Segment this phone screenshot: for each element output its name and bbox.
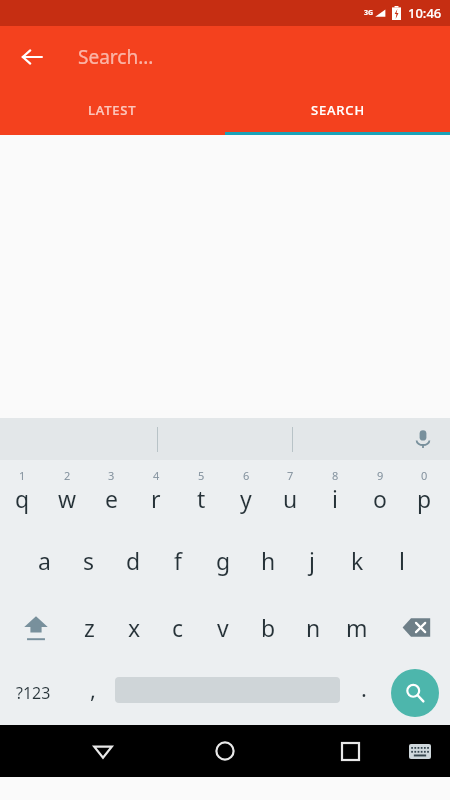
- staticText: SEARCH: [311, 101, 365, 119]
- staticText: LATEST: [88, 101, 137, 119]
- button[interactable]: j: [290, 527, 334, 594]
- staticText: l: [399, 545, 405, 576]
- button[interactable]: ,: [72, 661, 114, 725]
- button[interactable]: 2: [45, 460, 89, 527]
- button[interactable]: z: [67, 594, 111, 661]
- staticText: u: [283, 483, 298, 514]
- button[interactable]: 0: [402, 460, 446, 527]
- staticText: c: [172, 612, 184, 643]
- staticText: z: [84, 612, 95, 643]
- staticText: w: [58, 483, 77, 514]
- staticText: q: [15, 483, 30, 514]
- button[interactable]: h: [246, 527, 290, 594]
- staticText: r: [151, 483, 161, 514]
- button[interactable]: Backspace: [388, 594, 446, 661]
- staticText: 3G: [364, 8, 374, 18]
- button[interactable]: ?123: [2, 661, 64, 725]
- staticText: s: [83, 545, 95, 576]
- staticText: j: [309, 545, 315, 576]
- staticText: 1: [19, 468, 26, 483]
- button[interactable]: s: [67, 527, 111, 594]
- staticText: 7: [287, 468, 294, 483]
- staticText: f: [174, 545, 182, 576]
- button[interactable]: 5: [179, 460, 223, 527]
- staticText: y: [240, 483, 252, 514]
- button[interactable]: 7: [268, 460, 312, 527]
- staticText: p: [417, 483, 432, 514]
- button[interactable]: d: [111, 527, 155, 594]
- button[interactable]: 9: [358, 460, 402, 527]
- button[interactable]: .: [345, 661, 383, 725]
- staticText: h: [261, 545, 276, 576]
- staticText: o: [373, 483, 387, 514]
- staticText: t: [197, 483, 206, 514]
- staticText: g: [216, 545, 231, 576]
- button[interactable]: Shift: [6, 594, 66, 661]
- staticText: i: [332, 483, 338, 514]
- staticText: ,: [90, 674, 96, 704]
- button[interactable]: a: [22, 527, 66, 594]
- staticText: v: [217, 612, 229, 643]
- staticText: 3: [108, 468, 115, 483]
- staticText: 5: [198, 468, 205, 483]
- staticText: e: [105, 483, 118, 514]
- button[interactable]: k: [335, 527, 379, 594]
- button[interactable]: Search...: [78, 35, 450, 79]
- button[interactable]: 3: [89, 460, 133, 527]
- staticText: .: [361, 673, 367, 703]
- button[interactable]: b: [246, 594, 290, 661]
- button[interactable]: 4: [134, 460, 178, 527]
- staticText: b: [261, 612, 276, 643]
- button[interactable]: m: [335, 594, 379, 661]
- button[interactable]: 1: [0, 460, 44, 527]
- button[interactable]: v: [201, 594, 245, 661]
- staticText: 4: [153, 468, 160, 483]
- staticText: 8: [332, 468, 339, 483]
- button[interactable]: n: [291, 594, 335, 661]
- button[interactable]: SEARCH: [225, 88, 450, 132]
- staticText: 10:46: [408, 4, 442, 22]
- staticText: n: [306, 612, 321, 643]
- button[interactable]: 6: [224, 460, 268, 527]
- button[interactable]: LATEST: [0, 88, 225, 132]
- button[interactable]: Search: [391, 669, 439, 717]
- staticText: 2: [64, 468, 71, 483]
- button[interactable]: Back: [12, 37, 52, 77]
- staticText: ?123: [16, 682, 51, 704]
- staticText: 6: [243, 468, 250, 483]
- button[interactable]: Home: [195, 725, 255, 777]
- staticText: x: [128, 612, 141, 643]
- staticText: k: [351, 545, 364, 576]
- button[interactable]: f: [156, 527, 200, 594]
- button[interactable]: Voice input: [405, 421, 441, 457]
- staticText: a: [38, 545, 51, 576]
- button[interactable]: Hide keyboard: [73, 725, 133, 777]
- button[interactable]: l: [380, 527, 424, 594]
- staticText: d: [126, 545, 141, 576]
- button[interactable]: 8: [313, 460, 357, 527]
- button[interactable]: Keyboard indicator: [400, 731, 440, 771]
- button[interactable]: c: [156, 594, 200, 661]
- staticText: m: [346, 612, 368, 643]
- staticText: Search...: [78, 44, 154, 70]
- button[interactable]: x: [112, 594, 156, 661]
- staticText: 0: [421, 468, 428, 483]
- button[interactable]: g: [201, 527, 245, 594]
- staticText: 9: [377, 468, 384, 483]
- button[interactable]: Recents: [320, 725, 380, 777]
